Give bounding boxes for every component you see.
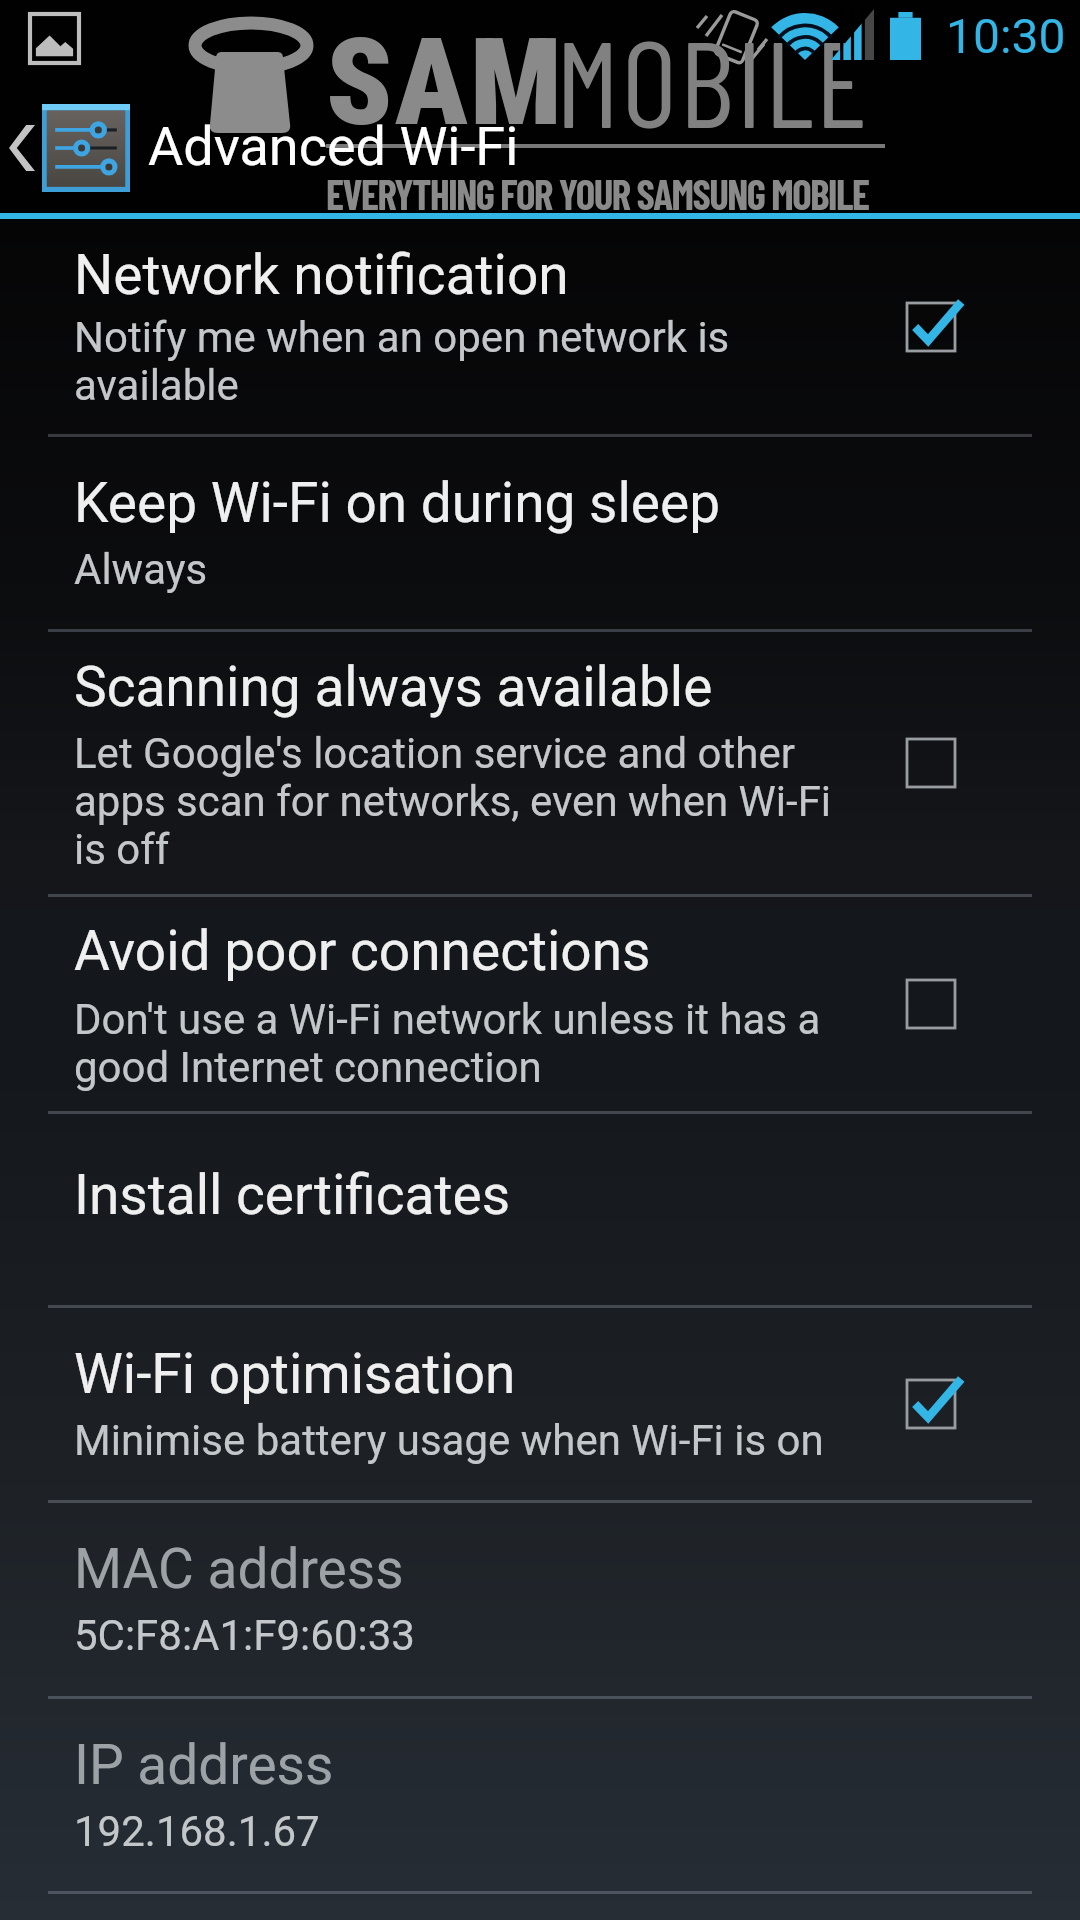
button[interactable]: Scanning always available [0,632,1080,894]
button[interactable]: Unchecked [867,952,971,1056]
staticText: Wi-Fi optimisation [74,1342,874,1406]
staticText: 192.168.1.67 [74,1807,864,1856]
button[interactable]: IP address [0,1699,1080,1891]
staticText: Install certificates [74,1163,874,1227]
button[interactable]: Avoid poor connections [0,897,1080,1111]
staticText: Keep Wi-Fi on during sleep [74,471,874,535]
button[interactable]: MAC address [0,1503,1080,1696]
staticText: MOBILE [556,7,870,152]
staticText: Advanced Wi-Fi [148,115,519,178]
staticText: Network notification [74,243,874,307]
staticText: Minimise battery usage when Wi-Fi is on [74,1416,864,1465]
staticText: Notify me when an open network is availa… [74,313,864,410]
staticText: Avoid poor connections [74,919,874,983]
staticText: 5C:F8:A1:F9:60:33 [74,1611,864,1660]
button[interactable]: Checked [867,275,971,379]
button[interactable]: Checked [867,1352,971,1456]
button[interactable]: Navigate up [0,94,136,202]
other: Screenshot captured [30,14,79,63]
staticText: 10:30 [946,8,1066,64]
staticText: Always [74,545,864,594]
button[interactable]: Wi-Fi optimisation [0,1308,1080,1500]
staticText: Let Google's location service and other … [74,729,864,874]
staticText: MAC address [74,1537,874,1601]
staticText: Don't use a Wi-Fi network unless it has … [74,995,864,1092]
button[interactable]: Unchecked [867,711,971,815]
button[interactable]: Network notification [0,219,1080,434]
button[interactable]: Keep Wi-Fi on during sleep [0,437,1080,629]
staticText: Scanning always available [74,655,874,719]
staticText: SAM [326,12,564,154]
button[interactable]: Install certificates [0,1114,1080,1305]
staticText: IP address [74,1733,874,1797]
staticText: EVERYTHING FOR YOUR SAMSUNG MOBILE [326,169,869,218]
